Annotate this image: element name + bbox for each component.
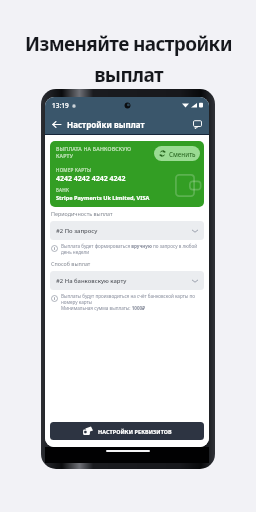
staticText: Минимальная сумма выплаты: 1000₽ [61,305,145,311]
staticText: НАСТРОЙКИ РЕКВИЗИТОВ [98,428,172,435]
staticText: БАНК [56,187,70,193]
staticText: ВЫПЛАТА НА БАНКОВСКУЮ КАРТУ [56,145,132,159]
staticText: выплат [94,62,163,88]
staticText: день недели [61,249,90,255]
button[interactable]: ВЫПЛАТА НА БАНКОВСКУЮ КАРТУ [50,141,204,207]
button[interactable]: #2 На банковскую карту [50,271,204,290]
staticText: 13:19 [52,101,69,110]
button[interactable]: #2 По запросу [50,221,204,240]
staticText: Способ выплат [51,260,91,267]
staticText: Выплата будет формироваться вручную по з… [61,243,198,249]
button[interactable]: Сменить [154,146,200,161]
staticText: 4242 4242 4242 4242 [56,174,126,184]
button[interactable]: Сообщения [189,116,205,132]
staticText: Сменить [169,150,196,158]
staticText: Выплаты будут производиться на счёт банк… [61,293,195,299]
staticText: Stripe Payments Uk Limited, VISA [56,194,150,202]
staticText: номеру карты [61,299,93,305]
button[interactable]: НАСТРОЙКИ РЕКВИЗИТОВ [50,422,204,440]
staticText: #2 По запросу [56,227,98,235]
button[interactable]: Назад [48,116,64,132]
staticText: НОМЕР КАРТЫ [56,167,92,173]
staticText: Настройки выплат [67,119,145,130]
staticText: Периодичность выплат [51,210,113,217]
staticText: #2 На банковскую карту [56,277,127,285]
staticText: Изменяйте настройки [25,31,232,57]
